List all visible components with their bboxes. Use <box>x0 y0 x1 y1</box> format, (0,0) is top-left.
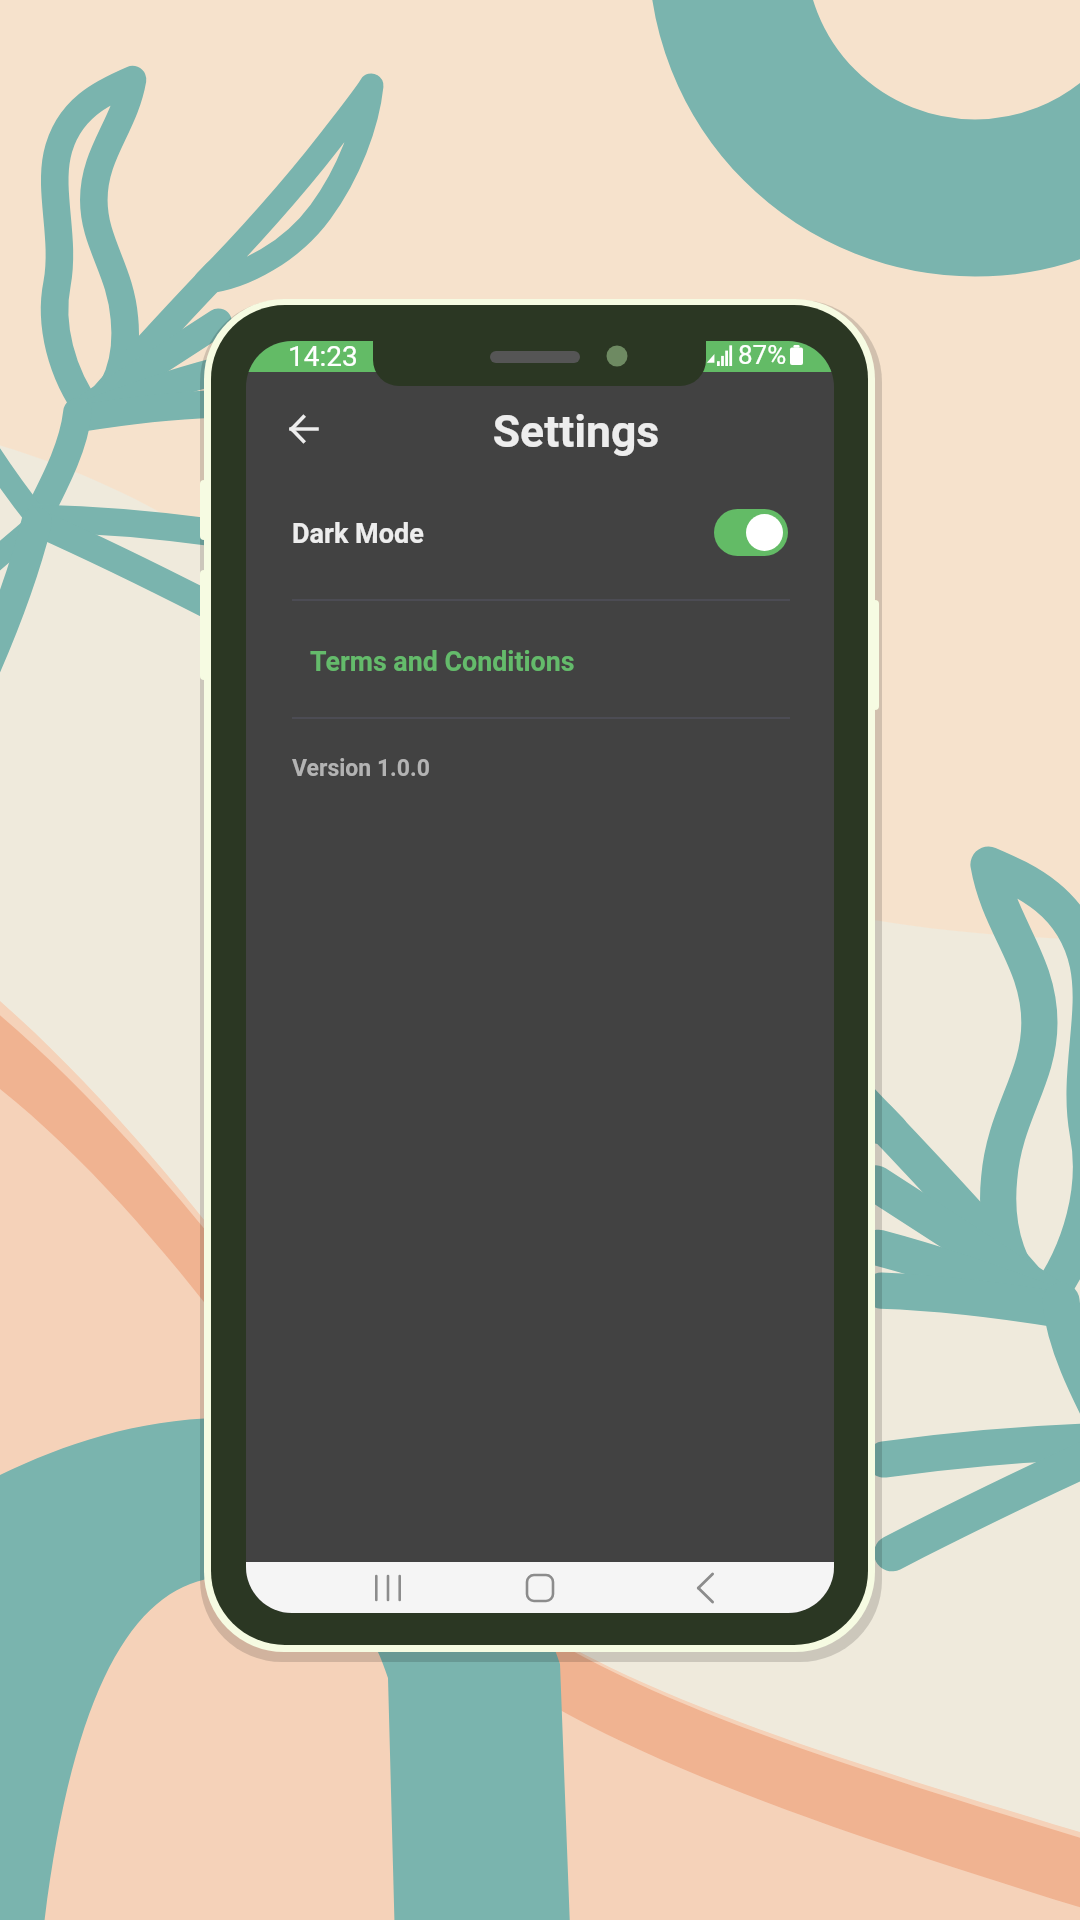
button[interactable]: Back <box>268 405 340 453</box>
button[interactable]: Recent apps <box>348 1562 428 1613</box>
staticText: Settings <box>282 406 834 458</box>
staticText: 14:23 <box>288 341 358 373</box>
button[interactable]: Home <box>500 1562 580 1613</box>
staticText: 87% <box>738 341 787 370</box>
staticText: Version 1.0.0 <box>292 755 430 782</box>
button[interactable]: Dark Mode <box>246 491 834 573</box>
staticText: Terms and Conditions <box>310 646 575 677</box>
button[interactable]: Back <box>666 1562 746 1613</box>
staticText: Dark Mode <box>292 518 424 550</box>
button[interactable]: Terms and Conditions <box>246 617 834 701</box>
